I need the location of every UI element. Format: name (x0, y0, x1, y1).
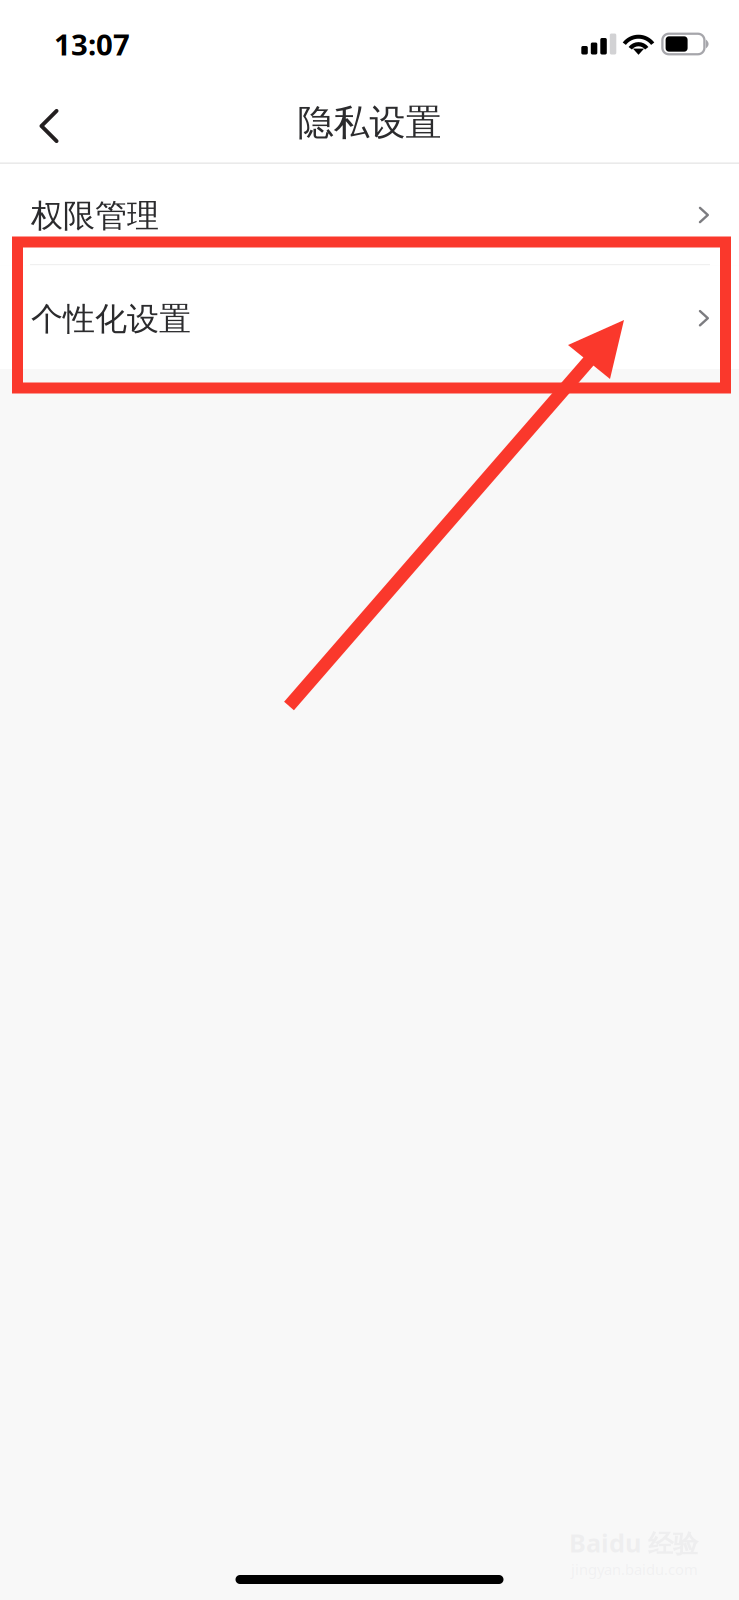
staticText: 13:07 (54, 24, 130, 63)
button[interactable]: 返回 (8, 88, 90, 164)
staticText: 个性化设置 (31, 299, 191, 339)
staticText: Baidu 经验 (569, 1526, 698, 1560)
button[interactable]: 个性化设置 (0, 265, 739, 369)
button[interactable]: 权限管理 (0, 164, 739, 264)
staticText: 权限管理 (31, 196, 159, 235)
staticText: 隐私设置 (297, 101, 441, 145)
